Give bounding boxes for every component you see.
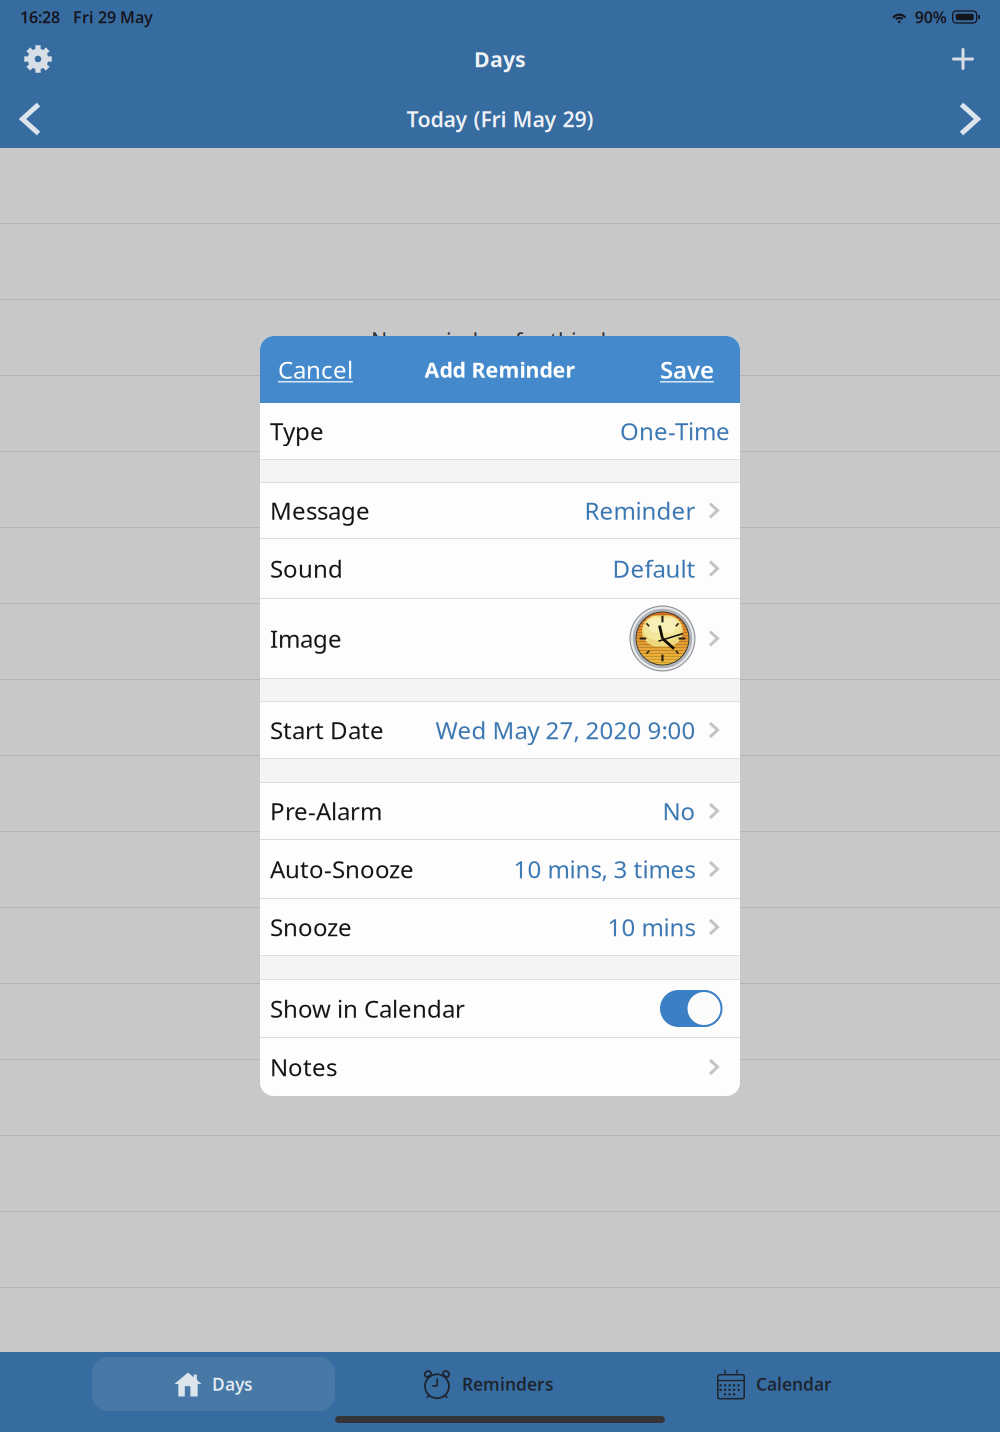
staticText: 10 mins, 3 times bbox=[513, 853, 695, 885]
button[interactable]: Auto-Snooze bbox=[260, 840, 740, 898]
staticText: Default bbox=[612, 553, 695, 584]
button[interactable]: Calendar bbox=[652, 1357, 895, 1411]
staticText: Days bbox=[474, 45, 526, 73]
staticText: Wed May 27, 2020 9:00 bbox=[435, 714, 695, 746]
button[interactable]: Add reminder bbox=[936, 33, 990, 85]
staticText: Show in Calendar bbox=[270, 993, 465, 1024]
staticText: 90% bbox=[915, 6, 947, 28]
staticText: Days bbox=[212, 1372, 253, 1395]
button[interactable]: Next day bbox=[939, 91, 999, 146]
button[interactable]: Settings bbox=[11, 33, 65, 85]
staticText: Snooze bbox=[270, 911, 352, 943]
staticText: No bbox=[662, 795, 695, 827]
button[interactable]: Type bbox=[260, 403, 740, 459]
staticText: Save bbox=[660, 354, 714, 385]
button[interactable]: Previous day bbox=[0, 91, 60, 146]
staticText: Add Reminder bbox=[424, 355, 575, 384]
staticText: 16:28 bbox=[20, 6, 60, 28]
staticText: Reminder bbox=[584, 495, 695, 526]
button[interactable]: Save bbox=[654, 348, 720, 391]
staticText: Type bbox=[270, 415, 324, 447]
staticText: One-Time bbox=[620, 415, 730, 447]
staticText: 10 mins bbox=[607, 911, 695, 943]
button[interactable]: Image bbox=[260, 599, 740, 678]
staticText: Auto-Snooze bbox=[270, 853, 414, 885]
button[interactable]: Reminders bbox=[366, 1357, 609, 1411]
button[interactable]: Days bbox=[92, 1357, 335, 1411]
staticText: Notes bbox=[270, 1051, 337, 1083]
staticText: Start Date bbox=[270, 714, 384, 746]
staticText: Pre-Alarm bbox=[270, 795, 382, 827]
staticText: Calendar bbox=[756, 1372, 832, 1395]
staticText: No reminders for this day bbox=[371, 326, 629, 354]
staticText: Message bbox=[270, 495, 370, 526]
button[interactable]: Sound bbox=[260, 539, 740, 598]
button[interactable]: Start Date bbox=[260, 702, 740, 758]
button[interactable]: Cancel bbox=[272, 348, 359, 391]
button[interactable]: Snooze bbox=[260, 899, 740, 955]
staticText: Image bbox=[270, 623, 342, 654]
button[interactable]: Message bbox=[260, 483, 740, 538]
button[interactable]: Notes bbox=[260, 1038, 740, 1096]
staticText: Sound bbox=[270, 553, 343, 584]
staticText: Fri 29 May bbox=[73, 6, 153, 28]
staticText: Reminders bbox=[462, 1372, 554, 1395]
button[interactable]: Show in Calendar bbox=[260, 980, 740, 1037]
staticText: Today (Fri May 29) bbox=[406, 105, 593, 133]
staticText: Cancel bbox=[278, 354, 353, 385]
button[interactable]: Pre-Alarm bbox=[260, 783, 740, 839]
